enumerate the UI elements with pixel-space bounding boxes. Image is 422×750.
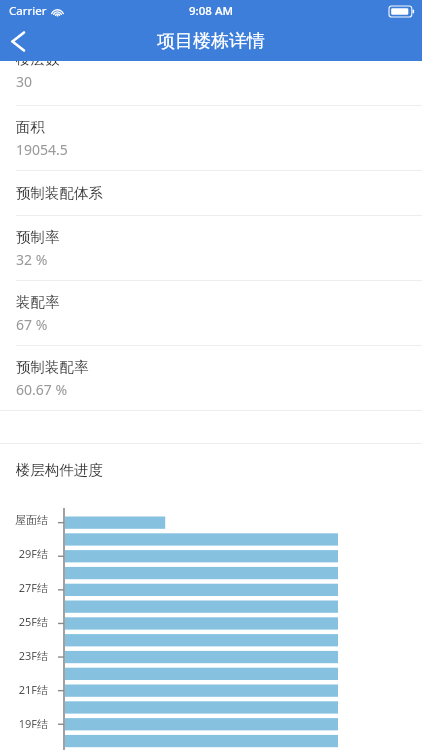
- staticText: 预制装配率: [16, 358, 89, 376]
- staticText: 25F结: [0, 614, 48, 629]
- button[interactable]: 面积: [0, 106, 422, 170]
- staticText: 预制装配体系: [16, 184, 103, 202]
- staticText: 30: [16, 72, 33, 91]
- button[interactable]: 楼层数: [0, 61, 422, 105]
- staticText: 23F结: [0, 648, 48, 663]
- button[interactable]: Back: [0, 22, 44, 61]
- staticText: 29F结: [0, 546, 48, 561]
- staticText: 32 %: [16, 250, 48, 269]
- staticText: 面积: [16, 118, 45, 136]
- staticText: 60.67 %: [16, 380, 68, 399]
- staticText: 21F结: [0, 682, 48, 697]
- staticText: 19054.5: [16, 140, 68, 159]
- button[interactable]: 预制率: [0, 216, 422, 280]
- staticText: 装配率: [16, 293, 60, 311]
- staticText: 19F结: [0, 716, 48, 731]
- staticText: 67 %: [16, 315, 48, 334]
- staticText: 项目楼栋详情: [157, 30, 265, 53]
- staticText: 9:08 AM: [189, 3, 233, 19]
- staticText: 预制率: [16, 228, 60, 246]
- button[interactable]: 预制装配率: [0, 346, 422, 410]
- button[interactable]: 装配率: [0, 281, 422, 345]
- staticText: 楼层构件进度: [16, 461, 103, 479]
- staticText: 屋面结: [0, 513, 48, 527]
- staticText: Carrier: [9, 3, 47, 19]
- staticText: 27F结: [0, 580, 48, 595]
- staticText: 楼层数: [16, 61, 60, 68]
- button[interactable]: 预制装配体系: [0, 171, 422, 215]
